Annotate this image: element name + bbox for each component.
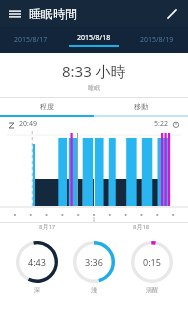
staticText: 睡眠: [88, 84, 100, 92]
staticText: 2015/8/19: [140, 35, 174, 45]
staticText: 淺: [91, 286, 97, 294]
staticText: 深: [34, 286, 40, 294]
staticText: 移動: [134, 102, 148, 111]
staticText: 4:43: [28, 256, 46, 268]
button[interactable]: 3:36: [70, 238, 118, 296]
button[interactable]: 4:43: [13, 238, 61, 296]
staticText: 睡眠時間: [29, 6, 77, 21]
button[interactable]: 2015/8/17: [0, 27, 62, 53]
staticText: 0:15: [143, 256, 161, 268]
staticText: 8月17: [39, 223, 56, 231]
staticText: 2015/8/17: [14, 35, 48, 45]
button[interactable]: 2015/8/19: [125, 27, 188, 53]
staticText: 5:22: [154, 119, 168, 129]
staticText: 2015/8/18: [77, 33, 111, 43]
button[interactable]: Menu: [4, 3, 26, 25]
button[interactable]: Edit: [161, 3, 183, 25]
button[interactable]: 2015/8/18: [62, 27, 125, 53]
button[interactable]: 程度: [0, 98, 94, 115]
staticText: 3:36: [85, 256, 103, 268]
staticText: 程度: [40, 102, 54, 111]
staticText: 8月18: [133, 223, 150, 231]
staticText: 8:33 小時: [62, 61, 126, 81]
button[interactable]: 移動: [94, 98, 188, 115]
button[interactable]: 0:15: [128, 238, 176, 296]
staticText: 20:49: [19, 119, 37, 129]
staticText: 清醒: [146, 286, 158, 294]
